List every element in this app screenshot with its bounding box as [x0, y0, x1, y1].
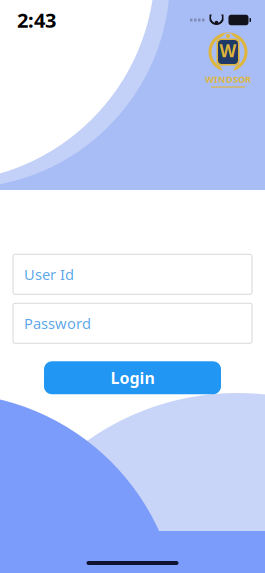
- staticText: Login: [110, 367, 154, 388]
- button[interactable]: Password: [13, 303, 252, 343]
- staticText: 2:43: [17, 7, 56, 33]
- button[interactable]: User Id: [13, 254, 252, 294]
- staticText: WINDSOR: [205, 73, 251, 85]
- staticText: User Id: [24, 265, 74, 284]
- staticText: W: [219, 39, 236, 62]
- staticText: Password: [24, 314, 91, 333]
- button[interactable]: Login: [44, 361, 221, 394]
